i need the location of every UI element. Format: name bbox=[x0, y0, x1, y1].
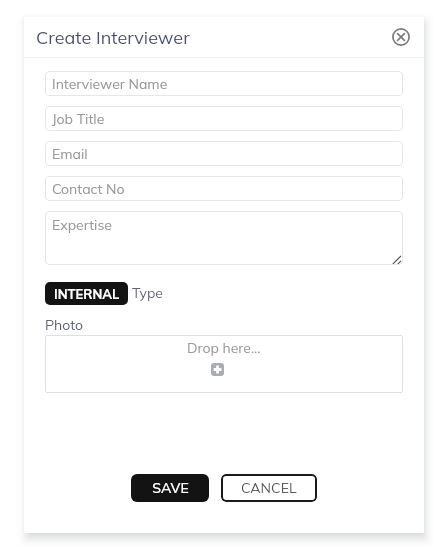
button[interactable]: Drop here... bbox=[45, 335, 403, 393]
button[interactable]: Job Title bbox=[45, 106, 403, 131]
button[interactable]: CANCEL bbox=[221, 474, 317, 502]
button[interactable]: INTERNAL bbox=[45, 282, 128, 305]
staticText: CANCEL bbox=[241, 479, 297, 497]
staticText: INTERNAL bbox=[54, 286, 120, 302]
staticText: Photo bbox=[45, 316, 84, 334]
button[interactable]: Interviewer Name bbox=[45, 71, 403, 96]
staticText: Create Interviewer bbox=[36, 26, 190, 49]
button[interactable]: Expertise bbox=[45, 211, 403, 265]
button[interactable]: Contact No bbox=[45, 176, 403, 201]
staticText: Expertise bbox=[52, 216, 112, 234]
button[interactable]: Email bbox=[45, 141, 403, 166]
other: Add photo bbox=[211, 363, 224, 376]
staticText: Drop here... bbox=[187, 339, 261, 357]
staticText: SAVE bbox=[152, 479, 189, 497]
staticText: Contact No bbox=[52, 180, 125, 198]
button[interactable]: SAVE bbox=[131, 474, 209, 502]
button[interactable]: Close bbox=[389, 25, 413, 49]
staticText: Interviewer Name bbox=[52, 75, 168, 93]
staticText: Job Title bbox=[52, 110, 105, 128]
staticText: Email bbox=[52, 145, 88, 163]
staticText: Type bbox=[132, 284, 163, 302]
